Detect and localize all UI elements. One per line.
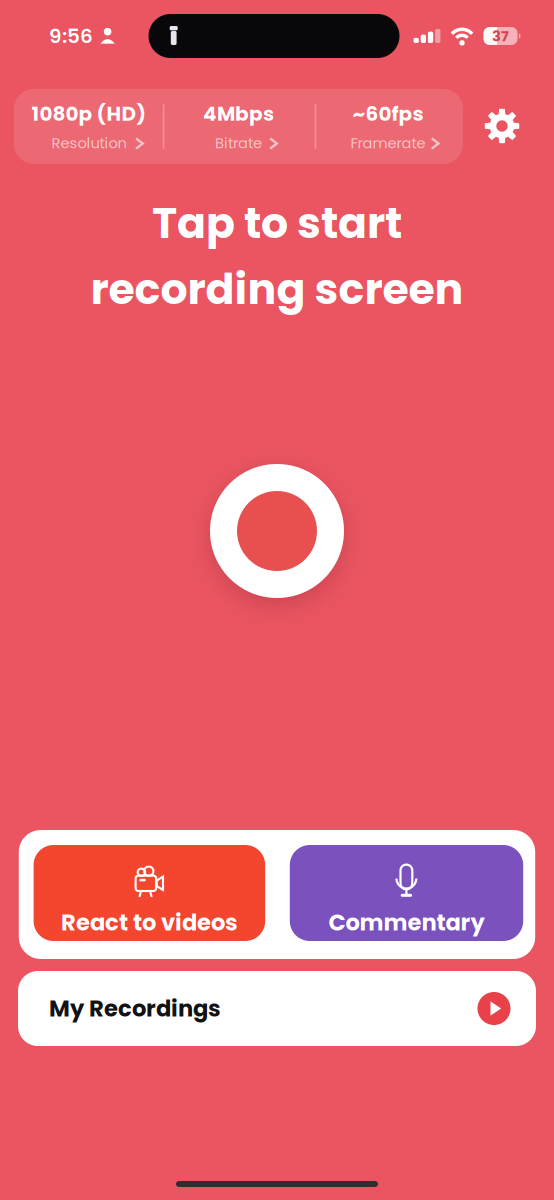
button[interactable]: 4Mbps [164,89,313,164]
staticText: Commentary [328,907,484,938]
staticText: 9:56 [49,22,93,50]
button[interactable]: 1080p (HD) [14,89,164,164]
staticText: 37 [492,26,509,46]
staticText: Tap to start [152,193,402,253]
button[interactable]: Settings [476,100,528,152]
staticText: React to videos [61,907,238,938]
staticText: recording screen [90,259,463,319]
staticText: 4Mbps [203,100,274,128]
button[interactable]: ~60fps [313,89,463,164]
button[interactable]: Start recording [197,451,357,611]
staticText: 1080p (HD) [31,100,146,128]
button[interactable]: React to videos [34,845,265,941]
button[interactable]: Commentary [290,845,523,941]
staticText: ~60fps [353,100,424,128]
staticText: Framerate [351,133,426,153]
button[interactable]: My Recordings [18,971,536,1046]
staticText: Bitrate [215,133,262,153]
staticText: Resolution [51,133,126,153]
staticText: My Recordings [49,993,221,1024]
